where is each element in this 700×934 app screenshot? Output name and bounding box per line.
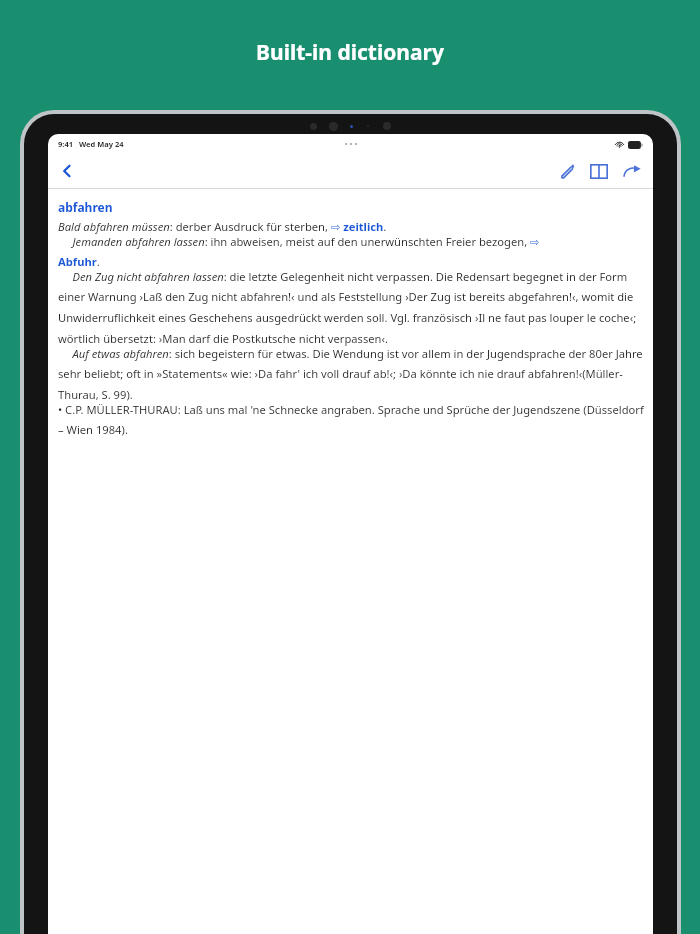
staticText: Bald abfahren müssen: derber Ausdruck fü… (58, 219, 387, 234)
button[interactable]: Share (617, 156, 647, 186)
staticText: abfahren (58, 199, 113, 215)
staticText: Auf etwas abfahren: sich begeistern für … (58, 346, 645, 402)
staticText: 9:41 (58, 139, 73, 149)
button[interactable]: Back (52, 156, 82, 186)
staticText: • C.P. MÜLLER-THURAU: Laß uns mal 'ne Sc… (58, 402, 645, 437)
button[interactable]: Two page view (584, 156, 614, 186)
staticText: Jemanden abfahren lassen: ihn abweisen, … (58, 234, 540, 269)
staticText: Den Zug nicht abfahren lassen: die letzt… (58, 269, 645, 346)
staticText: Wed May 24 (79, 139, 124, 149)
button[interactable]: Edit (551, 156, 581, 186)
staticText: Built-in dictionary (256, 38, 444, 67)
